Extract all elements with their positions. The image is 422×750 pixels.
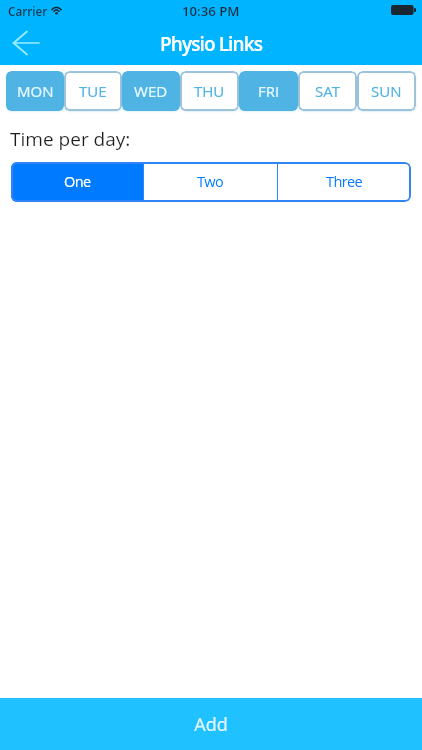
staticText: Carrier [8,3,48,19]
staticText: Two [197,172,224,192]
staticText: SAT [315,81,340,101]
staticText: Add [194,712,228,737]
button[interactable]: SUN [357,71,416,111]
button[interactable]: Two [144,162,277,202]
button[interactable]: FRI [239,71,298,111]
button[interactable]: TUE [64,71,122,111]
staticText: FRI [258,81,280,101]
button[interactable]: THU [180,71,239,111]
staticText: WED [134,81,168,101]
button[interactable]: Add [0,698,422,750]
button[interactable]: WED [122,71,180,111]
staticText: Physio Links [160,31,262,57]
button[interactable]: Three [278,162,411,202]
staticText: Three [326,172,363,192]
staticText: TUE [79,81,107,101]
staticText: 10:36 PM [182,2,240,20]
staticText: Time per day: [10,126,131,152]
staticText: MON [17,81,54,101]
button[interactable]: Back [0,22,44,65]
staticText: THU [194,81,225,101]
button[interactable]: MON [6,71,64,111]
button[interactable]: One [11,162,143,202]
staticText: One [64,172,91,192]
staticText: SUN [371,81,402,101]
button[interactable]: SAT [298,71,357,111]
